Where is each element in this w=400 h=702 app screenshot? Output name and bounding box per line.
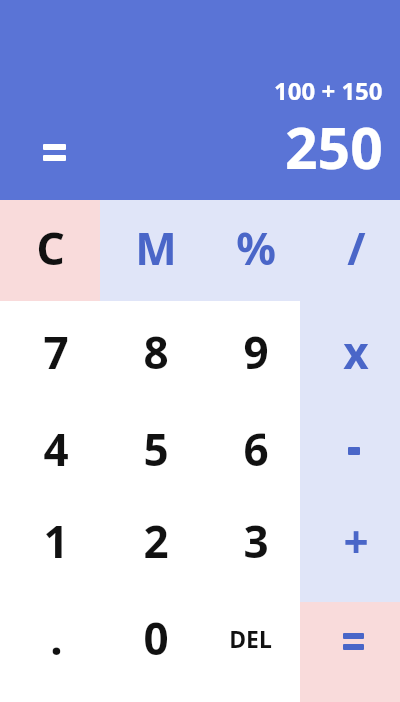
staticText: 2: [143, 511, 169, 571]
button[interactable]: 7: [0, 301, 100, 402]
button[interactable]: /: [300, 200, 400, 301]
button[interactable]: .: [0, 602, 100, 702]
button[interactable]: 8: [100, 301, 200, 402]
staticText: 6: [243, 419, 269, 479]
button[interactable]: 6: [200, 402, 300, 502]
button[interactable]: [300, 402, 400, 502]
staticText: +: [343, 511, 369, 571]
button[interactable]: 5: [100, 402, 200, 502]
button[interactable]: 3: [200, 502, 300, 602]
staticText: M: [135, 218, 177, 278]
button[interactable]: [300, 602, 400, 702]
button[interactable]: %: [200, 200, 300, 301]
staticText: /: [347, 218, 366, 278]
button[interactable]: 1: [0, 502, 100, 602]
staticText: 4: [43, 419, 69, 479]
staticText: DEL: [229, 623, 272, 654]
staticText: 250: [285, 108, 383, 186]
button[interactable]: M: [100, 200, 200, 301]
button[interactable]: 0: [100, 602, 200, 702]
button[interactable]: C: [0, 200, 100, 301]
staticText: 5: [143, 419, 169, 479]
button[interactable]: 9: [200, 301, 300, 402]
staticText: 3: [243, 511, 269, 571]
staticText: C: [36, 218, 65, 278]
staticText: 1: [43, 511, 69, 571]
staticText: %: [236, 218, 276, 278]
button[interactable]: +: [300, 502, 400, 602]
staticText: 100 + 150: [274, 74, 383, 107]
button[interactable]: DEL: [200, 602, 300, 702]
button[interactable]: 4: [0, 402, 100, 502]
staticText: 7: [43, 322, 69, 382]
button[interactable]: 2: [100, 502, 200, 602]
staticText: 9: [243, 322, 269, 382]
staticText: 8: [143, 322, 169, 382]
button[interactable]: x: [300, 301, 400, 402]
staticText: .: [50, 608, 63, 668]
staticText: x: [343, 322, 369, 382]
staticText: 0: [143, 608, 169, 668]
